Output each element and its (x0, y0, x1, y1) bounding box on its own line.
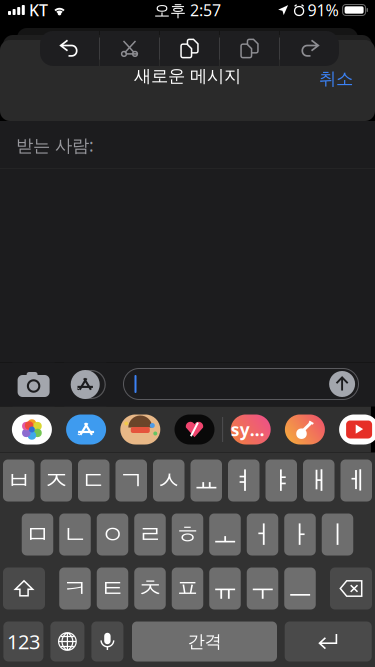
staticText: KT (29, 0, 48, 21)
staticText: ㅋ (62, 573, 87, 604)
button[interactable]: ㅔ (340, 459, 372, 501)
button[interactable]: ㅑ (265, 459, 297, 501)
button[interactable]: 123 (3, 621, 43, 661)
button[interactable]: ㅍ (172, 567, 203, 609)
button[interactable]: ㅜ (247, 567, 278, 609)
button[interactable]: ㄹ (134, 513, 166, 555)
staticText: 취소 (319, 68, 353, 89)
staticText: 91% (308, 0, 339, 21)
staticText: 새로운 메시지 (134, 65, 241, 87)
button[interactable]: ㄱ (115, 459, 147, 501)
staticText: ㄷ (81, 465, 106, 496)
button[interactable]: 카메라 (13, 362, 55, 406)
staticText: ㅏ (287, 519, 312, 550)
staticText: 받는 사람: (16, 133, 94, 156)
button[interactable]: 키보드 변경 (50, 621, 84, 661)
button[interactable]: YouTube (339, 414, 375, 444)
staticText: ㄱ (119, 465, 144, 496)
staticText: ㅕ (231, 465, 256, 496)
button[interactable]: 다시 실행 (280, 31, 339, 66)
button[interactable]: App Store (64, 362, 106, 406)
staticText: 오후 2:57 (154, 0, 221, 21)
button[interactable]: Shift (3, 567, 45, 609)
button[interactable]: ㅕ (228, 459, 259, 501)
button[interactable]: 확인 (285, 621, 372, 661)
button[interactable]: ㅓ (247, 513, 278, 555)
button[interactable]: ㅡ (284, 567, 316, 609)
staticText: ㅣ (325, 519, 350, 550)
button[interactable]: ㅎ (172, 513, 203, 555)
staticText: ㅍ (175, 573, 200, 604)
staticText: ㅑ (269, 465, 294, 496)
staticText: 간격 (187, 631, 221, 652)
button[interactable]: ㄴ (59, 513, 91, 555)
button[interactable]: ㅗ (209, 513, 241, 555)
button[interactable]: 받아쓰기 (91, 621, 123, 661)
staticText: ㅓ (250, 519, 275, 550)
button[interactable]: 전송 (329, 371, 355, 397)
staticText: ㅡ (287, 573, 312, 604)
button[interactable]: 지우기 (330, 567, 372, 609)
button[interactable]: ㅇ (97, 513, 128, 555)
staticText: ㄴ (62, 519, 87, 550)
button[interactable]: ㅋ (59, 567, 91, 609)
button[interactable]: ㅠ (209, 567, 241, 609)
button[interactable]: 간격 (132, 621, 277, 661)
staticText: ㅎ (175, 519, 200, 550)
staticText: ㅈ (44, 465, 69, 496)
staticText: syrup (231, 418, 271, 441)
button[interactable]: 복사하기 (160, 31, 219, 66)
staticText: ㅊ (137, 573, 162, 604)
staticText: ㅁ (25, 519, 50, 550)
button[interactable]: ㅊ (134, 567, 166, 609)
staticText: ㅛ (194, 465, 219, 496)
button[interactable]: 음악 (285, 414, 325, 444)
staticText: ㅠ (212, 573, 237, 604)
button[interactable]: ㅣ (322, 513, 353, 555)
staticText: ㅅ (156, 465, 181, 496)
button[interactable]: ㅈ (40, 459, 72, 501)
button[interactable]: ㄷ (78, 459, 109, 501)
button[interactable]: 미모티콘 (120, 414, 160, 444)
button[interactable]: ㅏ (284, 513, 316, 555)
staticText: ㅇ (100, 519, 125, 550)
button[interactable]: ㅐ (303, 459, 334, 501)
button[interactable]: ㅛ (190, 459, 222, 501)
button[interactable]: 사진 (12, 414, 52, 444)
staticText: 123 (7, 628, 40, 655)
button[interactable]: Digital Touch (174, 414, 214, 444)
button[interactable]: ㅅ (153, 459, 184, 501)
staticText: ㅌ (100, 573, 125, 604)
staticText: ㅜ (250, 573, 275, 604)
button[interactable]: 실행 취소 (40, 31, 99, 66)
button[interactable]: App Store (66, 414, 106, 444)
staticText: ㅂ (6, 465, 31, 496)
button[interactable]: 붙여넣기 (220, 31, 279, 66)
staticText: ㅗ (212, 519, 237, 550)
button[interactable]: ㅂ (3, 459, 34, 501)
button[interactable]: ㅁ (22, 513, 53, 555)
button[interactable]: ㅌ (97, 567, 128, 609)
button[interactable]: Syrup (231, 414, 271, 444)
staticText: ㄹ (137, 519, 162, 550)
button[interactable]: 취소 (308, 61, 364, 96)
button[interactable]: 오려두기 (100, 31, 159, 66)
staticText: ㅔ (344, 465, 369, 496)
staticText: ㅐ (306, 465, 331, 496)
